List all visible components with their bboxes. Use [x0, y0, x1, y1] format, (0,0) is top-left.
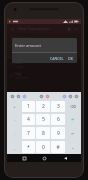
staticText: . [14, 131, 16, 136]
button[interactable]: 0 [36, 141, 50, 153]
staticText: ⌫ [70, 104, 76, 109]
button[interactable]: ↵ [66, 114, 80, 125]
staticText: 0 [42, 144, 45, 151]
button[interactable]: + [8, 101, 21, 112]
button[interactable]: ← [66, 127, 80, 139]
button[interactable]: 8 [36, 127, 50, 139]
staticText: OK [68, 56, 73, 61]
button[interactable]: OK [66, 55, 75, 62]
staticText: 3 [57, 103, 60, 110]
button[interactable]: 3 [51, 101, 65, 112]
button[interactable]: CANCEL [48, 55, 66, 62]
staticText: ↵ [71, 117, 75, 122]
button[interactable]: Delete [65, 25, 72, 32]
button[interactable]: * [22, 141, 35, 153]
button[interactable]: Translate [61, 93, 67, 99]
staticText: 8 [42, 130, 45, 137]
button[interactable]: Home [40, 154, 48, 162]
button[interactable]: 4 [22, 114, 35, 125]
button[interactable]: 5 [36, 114, 50, 125]
button[interactable]: Theme [15, 93, 21, 99]
staticText: , [14, 145, 16, 150]
staticText: Date [15, 60, 23, 65]
button[interactable]: ⌫ [66, 101, 80, 112]
button[interactable]: Back [61, 154, 69, 162]
staticText: 7 [27, 130, 30, 137]
staticText: Tag [15, 71, 21, 76]
button[interactable]: Clipboard [38, 93, 44, 99]
staticText: 1 [27, 103, 30, 110]
button[interactable]: ⌄ [66, 141, 80, 153]
staticText: ⌄ [71, 145, 75, 150]
button[interactable]: More [73, 93, 79, 99]
button[interactable]: GIF [21, 93, 27, 99]
staticText: Package [11, 35, 31, 42]
staticText: 9 [57, 130, 60, 137]
staticText: 5 [42, 116, 45, 123]
staticText: - [14, 117, 16, 122]
staticText: 2 [42, 103, 45, 110]
button[interactable]: 2 [36, 101, 50, 112]
staticText: # [56, 144, 60, 151]
button[interactable]: 9 [51, 127, 65, 139]
button[interactable]: Settings [9, 93, 15, 99]
button[interactable]: Emoji [67, 93, 73, 99]
staticText: New Transaction [18, 26, 50, 31]
button[interactable]: 7 [22, 127, 35, 139]
staticText: + [13, 104, 16, 109]
button[interactable]: Back [9, 25, 16, 32]
staticText: Enter amount [15, 43, 41, 48]
button[interactable]: 6 [51, 114, 65, 125]
button[interactable]: Recents [20, 154, 28, 162]
button[interactable]: 1 [22, 101, 35, 112]
staticText: 4 [27, 116, 30, 123]
staticText: * [27, 144, 30, 151]
button[interactable]: # [51, 141, 65, 153]
staticText: ← [71, 131, 75, 136]
staticText: CANCEL [50, 56, 64, 61]
button[interactable]: Sticker [44, 93, 50, 99]
staticText: 6 [57, 116, 60, 123]
